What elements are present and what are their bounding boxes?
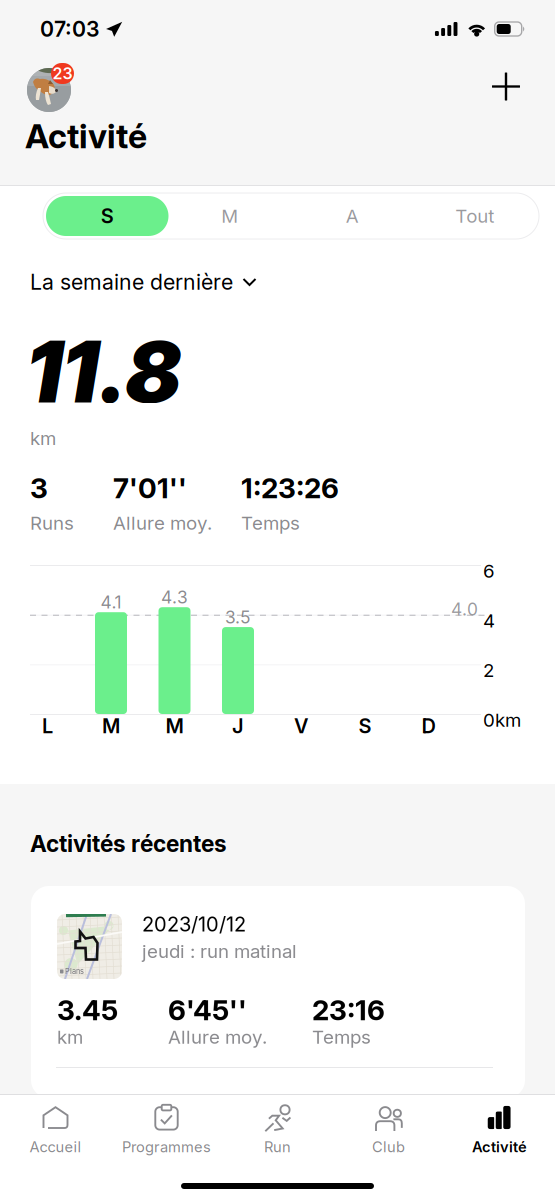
staticText: 23:16 xyxy=(312,993,385,1027)
staticText: M xyxy=(165,714,183,738)
staticText: 4.0 xyxy=(451,599,478,620)
button[interactable]: Programmes xyxy=(111,1095,222,1167)
staticText: 11.8 xyxy=(26,321,182,423)
staticText: L xyxy=(42,714,53,738)
staticText: Temps xyxy=(241,512,300,534)
staticText: Runs xyxy=(30,512,74,534)
button[interactable]: A xyxy=(291,196,413,236)
staticText: Temps xyxy=(312,1026,371,1048)
button[interactable]: Ajouter xyxy=(484,64,528,108)
staticText: M xyxy=(221,205,238,227)
staticText: 6'45'' xyxy=(168,993,247,1027)
staticText: 0km xyxy=(483,709,521,731)
button[interactable]: La semaine dernière xyxy=(30,267,257,297)
button[interactable]: Activité xyxy=(444,1095,555,1167)
staticText: Plans xyxy=(65,967,84,976)
staticText: S xyxy=(101,204,114,228)
button[interactable]: Club xyxy=(333,1095,444,1167)
staticText: km xyxy=(30,427,56,450)
staticText: 6 xyxy=(483,560,495,582)
staticText: Programmes xyxy=(122,1138,211,1156)
button[interactable]: Tout xyxy=(413,196,536,236)
staticText: 7'01'' xyxy=(113,471,187,505)
staticText: La semaine dernière xyxy=(30,269,233,295)
staticText: Club xyxy=(372,1138,405,1156)
staticText: Activité xyxy=(472,1138,527,1156)
staticText: Activités récentes xyxy=(30,830,227,857)
staticText: D xyxy=(421,714,435,738)
staticText: 23 xyxy=(52,64,72,83)
button[interactable]: M xyxy=(168,196,291,236)
button[interactable]: S xyxy=(46,196,168,236)
staticText: 3.45 xyxy=(57,993,118,1027)
staticText: A xyxy=(346,205,359,227)
staticText: 3 xyxy=(30,471,48,505)
staticText: Tout xyxy=(455,205,494,227)
staticText: Accueil xyxy=(29,1138,81,1156)
staticText: 4.3 xyxy=(161,587,188,608)
staticText: V xyxy=(294,714,309,738)
staticText: M xyxy=(102,714,120,738)
staticText: Allure moy. xyxy=(168,1026,267,1048)
staticText: jeudi : run matinal xyxy=(142,940,297,963)
staticText: km xyxy=(57,1026,83,1048)
staticText: Activité xyxy=(25,116,147,156)
staticText: J xyxy=(232,714,244,738)
staticText: 2 xyxy=(483,659,494,682)
staticText: 07:03 xyxy=(40,16,100,42)
staticText: 4.1 xyxy=(100,592,121,613)
staticText: 2023/10/12 xyxy=(142,912,246,936)
button[interactable]: Profil xyxy=(27,61,77,112)
staticText: S xyxy=(358,714,371,738)
button[interactable]: Run xyxy=(222,1095,333,1167)
staticText: Allure moy. xyxy=(113,512,212,534)
button[interactable]: Accueil xyxy=(0,1095,111,1167)
staticText: 4 xyxy=(483,609,495,632)
staticText: 3.5 xyxy=(225,607,251,628)
staticText: 1:23:26 xyxy=(241,471,339,505)
staticText: Run xyxy=(264,1138,291,1156)
